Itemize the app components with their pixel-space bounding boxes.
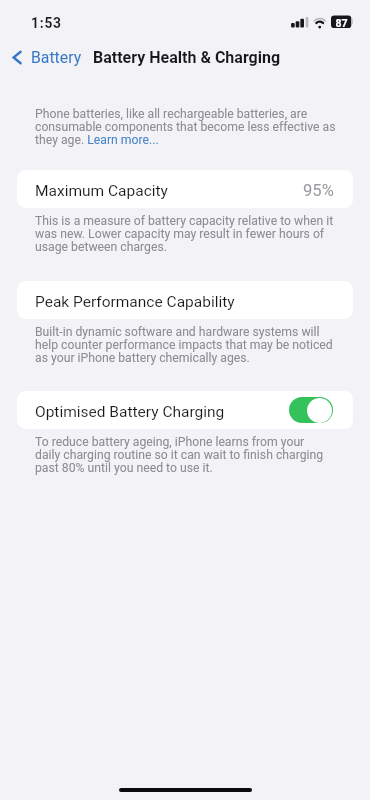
staticText: This is a measure of battery capacity re… [35,215,334,254]
staticText: Built-in dynamic software and hardware s… [35,326,333,365]
button[interactable]: Maximum Capacity [17,170,353,208]
staticText: 1:53 [31,15,62,31]
staticText: 95% [303,181,334,200]
button[interactable]: Optimised Battery Charging, on [289,397,333,423]
staticText: Battery [31,48,82,67]
staticText: To reduce battery ageing, iPhone learns … [35,436,324,475]
button[interactable]: Optimised Battery Charging [17,391,353,429]
button[interactable]: Peak Performance Capability [17,281,353,319]
staticText: Battery Health & Charging [93,48,281,67]
staticText: 87 [335,17,348,29]
staticText: Optimised Battery Charging [35,403,225,421]
button[interactable]: Back to Battery [0,45,86,70]
staticText: Phone batteries, like all rechargeable b… [35,108,336,147]
staticText: Maximum Capacity [35,182,168,200]
staticText: Peak Performance Capability [35,293,235,311]
